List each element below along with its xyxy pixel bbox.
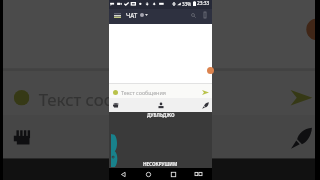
button[interactable]: Contacts [45,115,278,158]
button[interactable]: Boost [278,115,320,158]
button[interactable]: Contacts [123,98,198,112]
button[interactable]: Home [142,168,155,180]
staticText: ДУБЛЬДЖО [120,158,207,177]
staticText: Текст сообщения [39,87,179,109]
button[interactable]: More options [199,9,211,21]
button[interactable]: Emoji [14,90,29,105]
staticText: НЕСОКРУШИМ [143,161,178,167]
staticText: 23:33 [197,0,210,7]
button[interactable]: Emoji [113,90,118,95]
button[interactable]: Boost [198,98,212,112]
button[interactable]: Menu [111,9,123,21]
staticText: Текст сообщения [121,89,166,96]
button[interactable]: Stickers [1,115,45,158]
button[interactable]: Stickers [109,98,123,112]
staticText: ДУБЛЬДЖО [147,112,175,118]
button[interactable]: Search [187,9,199,21]
button[interactable]: Send [200,87,210,97]
button[interactable]: Send [284,81,315,112]
staticText: ЧАТ [126,11,138,19]
staticText: 33% [182,1,192,7]
button[interactable]: Split screen [192,168,205,180]
button[interactable]: Recents [167,168,180,180]
button[interactable]: Back [117,168,130,180]
